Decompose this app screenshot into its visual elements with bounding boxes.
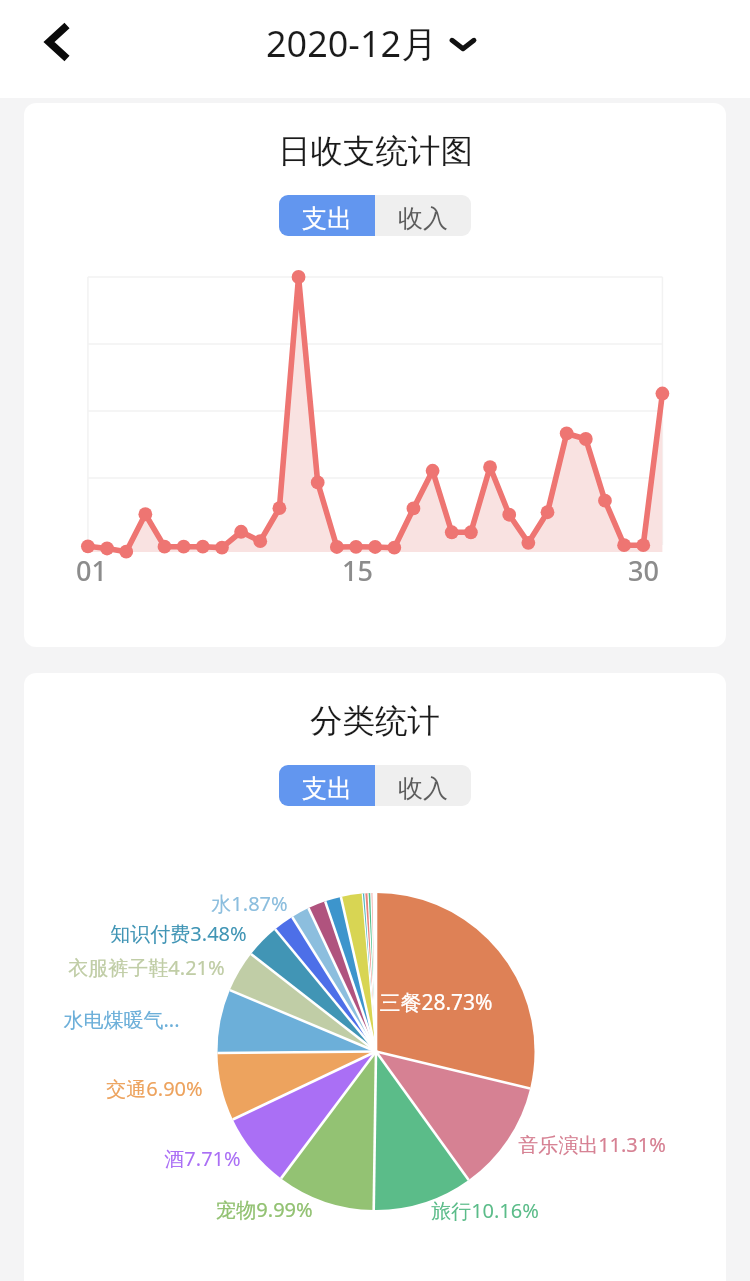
button[interactable]: 收入 xyxy=(375,195,471,236)
staticText: 收入 xyxy=(398,203,448,234)
staticText: 音乐演出11.31% xyxy=(518,1131,666,1158)
staticText: 水电煤暖气... xyxy=(63,1006,180,1033)
staticText: 水1.87% xyxy=(211,890,288,917)
staticText: 支出 xyxy=(302,773,352,804)
staticText: 日收支统计图 xyxy=(278,131,473,172)
staticText: 分类统计 xyxy=(310,701,440,742)
staticText: 三餐28.73% xyxy=(379,988,493,1017)
button[interactable]: 2020-12月 xyxy=(266,19,476,68)
staticText: 宠物9.99% xyxy=(216,1196,313,1223)
staticText: 30 xyxy=(628,552,659,589)
button[interactable]: 支出 xyxy=(279,195,375,236)
button[interactable]: 收入 xyxy=(375,765,471,806)
staticText: 交通6.90% xyxy=(106,1075,203,1102)
staticText: 知识付费3.48% xyxy=(110,920,247,947)
staticText: 15 xyxy=(342,552,373,589)
staticText: 衣服裤子鞋4.21% xyxy=(68,954,225,981)
staticText: 01 xyxy=(76,552,107,589)
staticText: 收入 xyxy=(398,773,448,804)
staticText: 旅行10.16% xyxy=(431,1197,539,1224)
staticText: 酒7.71% xyxy=(164,1145,241,1172)
button[interactable]: Back xyxy=(36,20,80,64)
staticText: 2020-12月 xyxy=(266,19,438,68)
staticText: 支出 xyxy=(302,203,352,234)
button[interactable]: 支出 xyxy=(279,765,375,806)
